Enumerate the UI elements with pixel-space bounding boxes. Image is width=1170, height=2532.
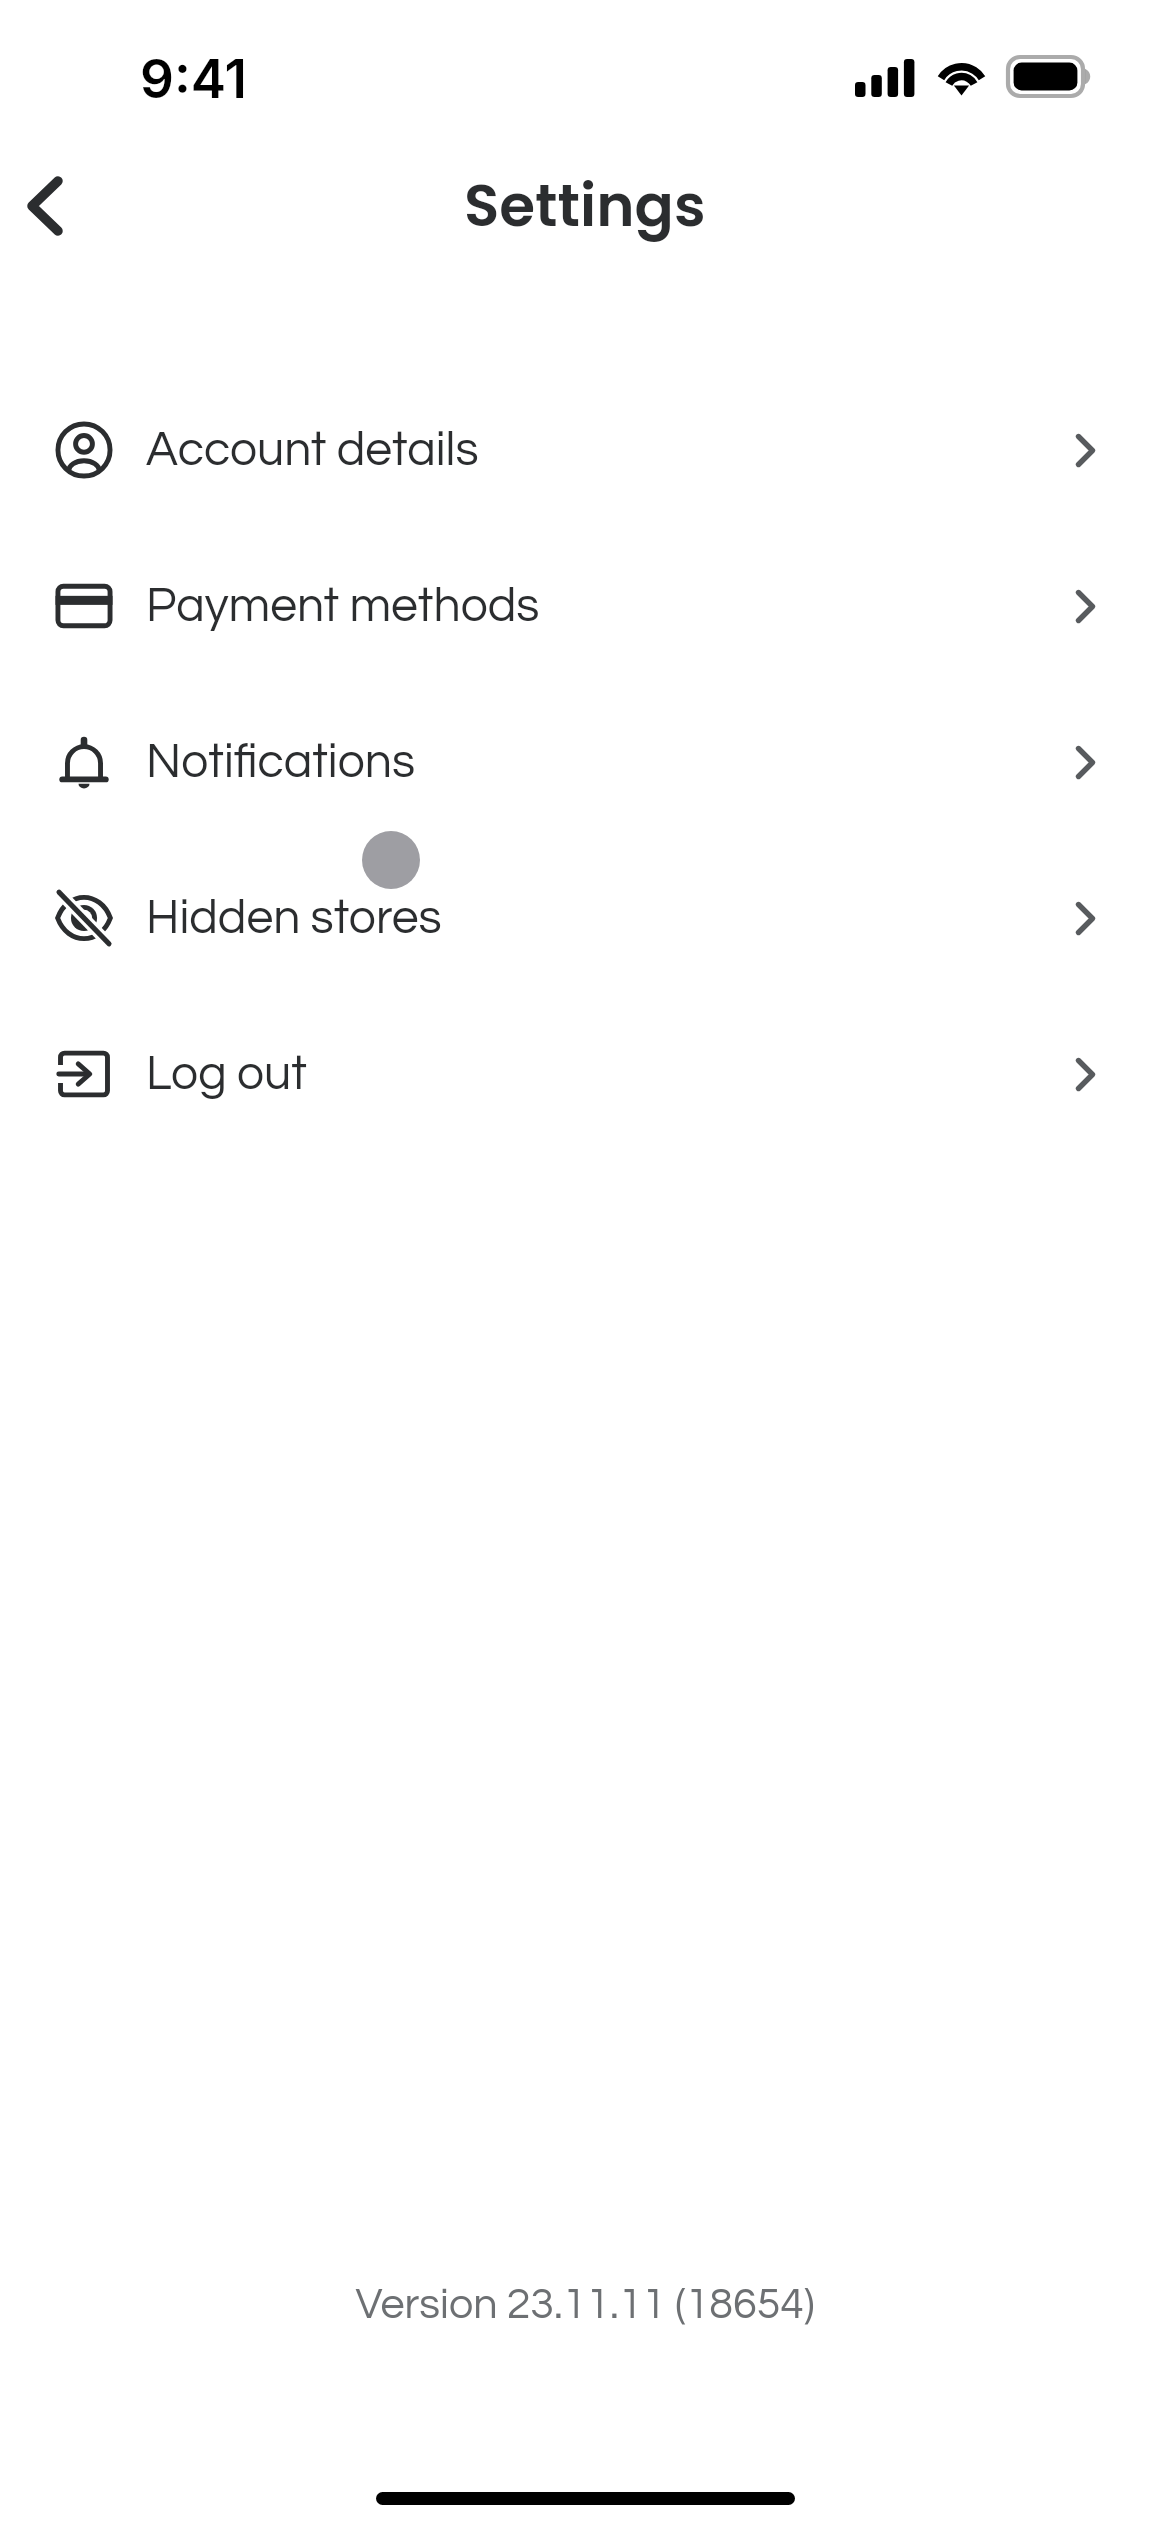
staticText: Version 23.11.11 (18654) [0, 2283, 1170, 2327]
button[interactable]: Notifications [0, 684, 1170, 840]
staticText: Log out [146, 1050, 307, 1099]
button[interactable]: Account details [0, 372, 1170, 528]
button[interactable]: Log out [0, 996, 1170, 1152]
staticText: Hidden stores [146, 894, 442, 943]
staticText: Notifications [146, 738, 416, 787]
staticText: 9:41 [140, 47, 247, 111]
button[interactable]: Payment methods [0, 528, 1170, 684]
button[interactable]: Back [0, 152, 90, 260]
button[interactable]: Hidden stores [0, 840, 1170, 996]
staticText: Settings [464, 165, 706, 246]
staticText: Account details [146, 426, 479, 475]
staticText: Payment methods [146, 582, 540, 631]
